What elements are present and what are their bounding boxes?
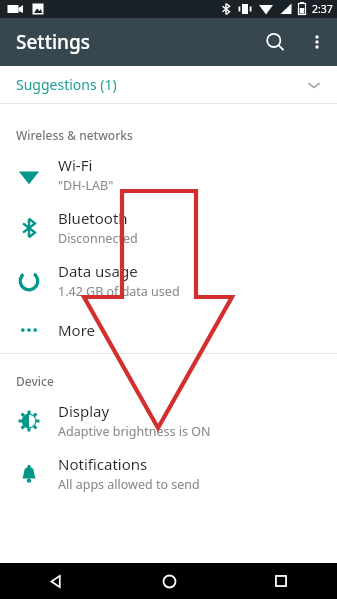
button[interactable]: Back: [0, 563, 113, 599]
staticText: All apps allowed to send: [58, 476, 200, 493]
button[interactable]: Display: [0, 394, 337, 447]
staticText: "DH-LAB": [58, 177, 114, 194]
staticText: Settings: [16, 29, 90, 55]
button[interactable]: More: [0, 307, 337, 353]
button[interactable]: Data usage: [0, 254, 337, 307]
button[interactable]: Home: [113, 563, 225, 599]
button[interactable]: Search: [253, 20, 297, 64]
staticText: Wi-Fi: [58, 155, 93, 175]
staticText: 1.42 GB of data used: [58, 283, 180, 300]
staticText: 2:37: [312, 2, 333, 16]
button[interactable]: Bluetooth: [0, 201, 337, 254]
staticText: Bluetooth: [58, 208, 128, 228]
button[interactable]: Notifications: [0, 447, 337, 500]
staticText: Suggestions (1): [16, 75, 117, 94]
staticText: Adaptive brightness is ON: [58, 423, 211, 440]
staticText: More: [58, 320, 96, 340]
staticText: Data usage: [58, 261, 138, 281]
staticText: Display: [58, 401, 110, 421]
button[interactable]: Suggestions (1): [0, 66, 337, 103]
staticText: Device: [16, 373, 54, 389]
staticText: Disconnected: [58, 230, 138, 247]
button[interactable]: Recent apps: [225, 563, 337, 599]
button[interactable]: Wi-Fi: [0, 148, 337, 201]
staticText: Notifications: [58, 454, 148, 474]
staticText: Wireless & networks: [16, 127, 133, 143]
button[interactable]: More options: [297, 22, 337, 62]
